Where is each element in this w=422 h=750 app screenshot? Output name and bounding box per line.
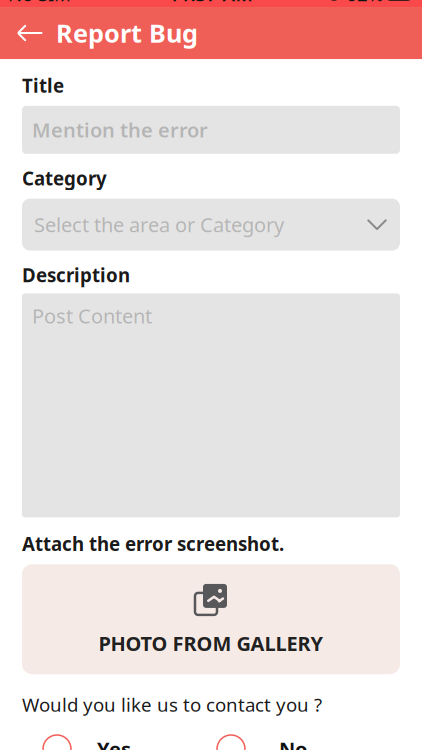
- staticText: PHOTO FROM GALLERY: [98, 630, 323, 656]
- staticText: 11:37 AM: [168, 0, 252, 6]
- button[interactable]: Select the area or Category: [22, 199, 400, 251]
- staticText: Category: [22, 166, 107, 191]
- staticText: Description: [22, 263, 130, 287]
- staticText: Mention the error: [32, 116, 208, 143]
- button[interactable]: Yes: [43, 729, 131, 750]
- staticText: Title: [22, 73, 64, 98]
- button[interactable]: Back: [4, 7, 56, 59]
- staticText: Post Content: [32, 302, 152, 329]
- staticText: Attach the error screenshot.: [22, 531, 284, 556]
- staticText: Yes: [97, 736, 131, 750]
- staticText: No SIM: [8, 0, 71, 6]
- staticText: 62%: [341, 0, 384, 6]
- staticText: Select the area or Category: [34, 211, 284, 238]
- staticText: No: [279, 736, 308, 750]
- button[interactable]: No: [217, 729, 308, 750]
- staticText: Would you like us to contact you ?: [22, 692, 322, 717]
- button[interactable]: PHOTO FROM GALLERY: [22, 564, 400, 674]
- staticText: Report Bug: [56, 16, 198, 50]
